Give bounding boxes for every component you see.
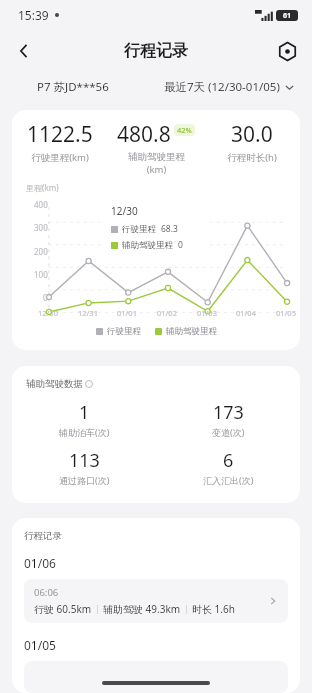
- button[interactable]: Back: [6, 33, 42, 69]
- staticText: 行驶里程: [107, 326, 141, 337]
- staticText: 辅助驾驶 49.3km: [103, 602, 181, 616]
- staticText: 300: [34, 222, 48, 233]
- button[interactable]: 最近7天 (12/30-01/05): [145, 79, 312, 95]
- staticText: 480.8: [117, 120, 171, 149]
- staticText: 辅助驾驶里程: [122, 240, 173, 251]
- staticText: 6: [223, 448, 234, 473]
- staticText: 200: [34, 246, 48, 257]
- staticText: 变道(次): [212, 426, 245, 438]
- staticText: 时长 1.6h: [192, 602, 235, 616]
- staticText: 173: [213, 400, 244, 425]
- staticText: 辅助泊车(次): [59, 426, 110, 438]
- staticText: 辅助驾驶里程: [166, 326, 217, 337]
- staticText: 行驶里程: [122, 224, 156, 235]
- staticText: 100: [34, 269, 48, 280]
- staticText: 最近7天 (12/30-01/05): [164, 79, 280, 95]
- staticText: 01/01: [117, 308, 137, 318]
- staticText: 行驶 60.5km: [34, 602, 92, 616]
- staticText: 30.0: [231, 120, 273, 149]
- staticText: 12/30: [38, 308, 58, 318]
- staticText: 1122.5: [27, 120, 93, 149]
- staticText: 61: [283, 11, 292, 21]
- staticText: 1: [79, 400, 90, 425]
- staticText: 12/31: [78, 308, 98, 318]
- staticText: 06:06: [34, 586, 59, 599]
- staticText: 01/05: [276, 308, 296, 318]
- staticText: 400: [34, 199, 48, 210]
- button[interactable]: 06:06: [24, 579, 288, 623]
- button[interactable]: [24, 661, 288, 693]
- staticText: 01/05: [24, 637, 56, 653]
- staticText: 15:39: [18, 7, 49, 23]
- staticText: 42%: [177, 125, 192, 135]
- staticText: 行程记录: [124, 41, 188, 61]
- button[interactable]: Settings: [270, 34, 304, 68]
- staticText: 汇入汇出(次): [203, 474, 254, 486]
- staticText: 113: [69, 448, 100, 473]
- staticText: 里程(km): [26, 182, 59, 193]
- staticText: 辅助驾驶数据: [26, 378, 83, 390]
- staticText: 通过路口(次): [59, 474, 110, 486]
- staticText: 辅助驾驶里程 (km): [128, 151, 185, 176]
- staticText: 0: [178, 239, 183, 251]
- staticText: P7 苏JD***56: [37, 79, 109, 95]
- staticText: 12/30: [111, 204, 138, 218]
- staticText: 01/03: [197, 308, 217, 318]
- staticText: 行程记录: [24, 530, 62, 542]
- button[interactable]: P7 苏JD***56: [0, 79, 145, 95]
- staticText: 01/06: [24, 555, 56, 571]
- staticText: 68.3: [161, 223, 178, 235]
- staticText: 01/04: [236, 308, 256, 318]
- staticText: 行驶里程(km): [31, 151, 89, 164]
- staticText: 01/02: [157, 308, 177, 318]
- staticText: 0: [43, 292, 48, 303]
- staticText: 行程时长(h): [227, 151, 277, 164]
